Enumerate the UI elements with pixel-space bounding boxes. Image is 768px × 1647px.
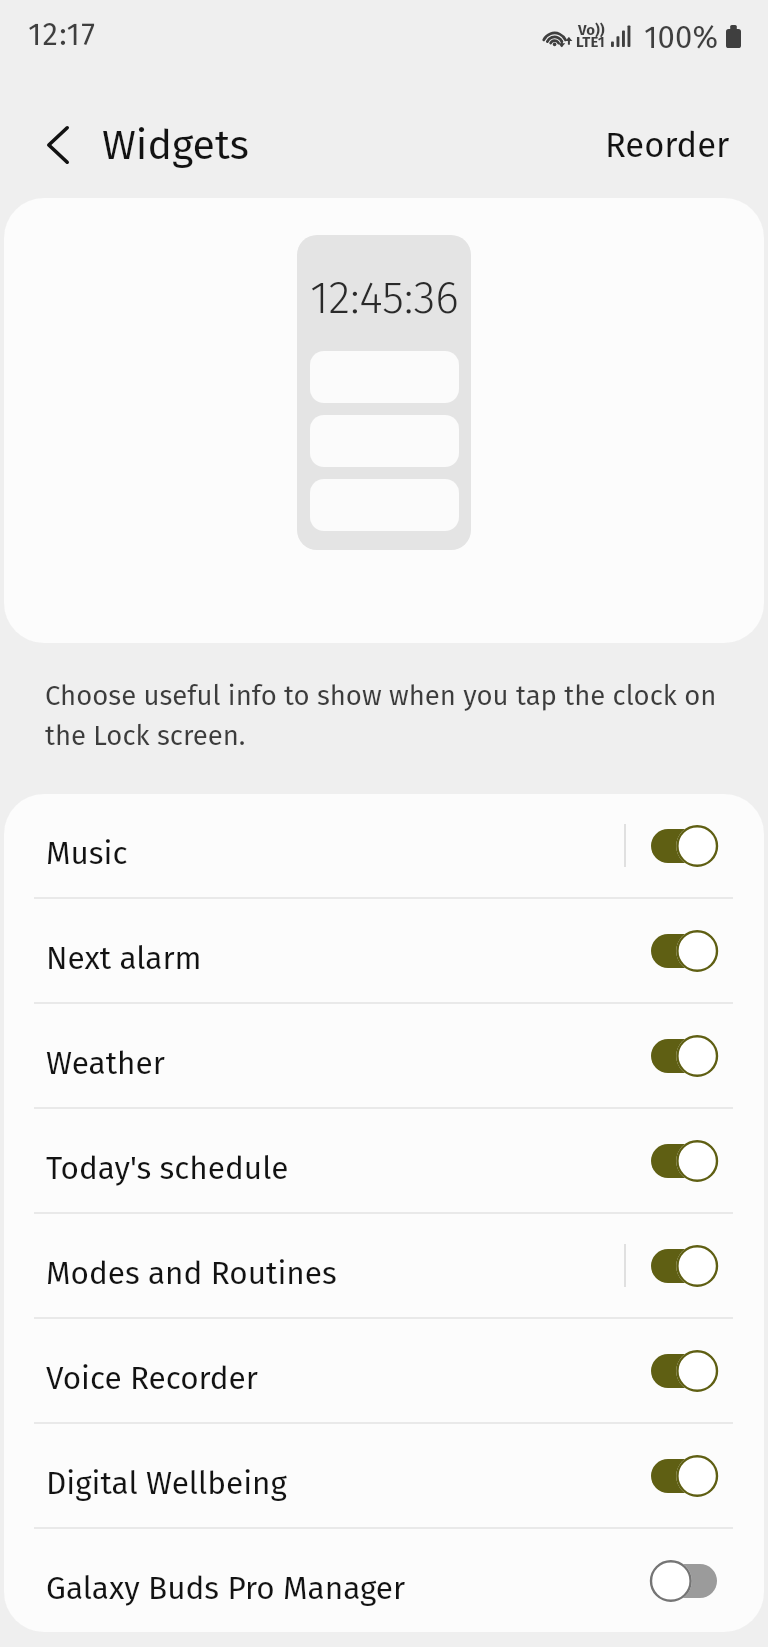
button[interactable]: Next alarm bbox=[4, 899, 764, 1002]
button[interactable]: Turn off bbox=[651, 1140, 717, 1182]
staticText: Choose useful info to show when you tap … bbox=[45, 679, 728, 752]
staticText: 12:17 bbox=[28, 16, 97, 53]
button[interactable]: Music bbox=[4, 794, 764, 897]
button[interactable]: Turn off bbox=[651, 1455, 717, 1497]
staticText: Galaxy Buds Pro Manager bbox=[46, 1570, 406, 1608]
staticText: Widgets bbox=[102, 121, 249, 170]
button[interactable]: Turn off bbox=[651, 825, 717, 867]
staticText: Vo)) bbox=[578, 21, 605, 39]
staticText: Modes and Routines bbox=[46, 1255, 337, 1293]
staticText: Today's schedule bbox=[46, 1150, 289, 1188]
staticText: Music bbox=[46, 835, 128, 873]
button[interactable]: Digital Wellbeing bbox=[4, 1424, 764, 1527]
button[interactable]: Today's schedule bbox=[4, 1109, 764, 1212]
button[interactable]: Weather bbox=[4, 1004, 764, 1107]
button[interactable]: Turn off bbox=[651, 1350, 717, 1392]
button[interactable]: Turn on bbox=[651, 1560, 717, 1602]
staticText: LTE1 bbox=[576, 33, 604, 51]
staticText: Digital Wellbeing bbox=[46, 1465, 287, 1503]
button[interactable]: Reorder bbox=[567, 103, 768, 188]
button[interactable]: Turn off bbox=[651, 1245, 717, 1287]
button[interactable]: Modes and Routines bbox=[4, 1214, 764, 1317]
staticText: Reorder bbox=[605, 125, 730, 166]
staticText: 12:45:36 bbox=[310, 271, 459, 325]
button[interactable]: Turn off bbox=[651, 1035, 717, 1077]
button[interactable]: Voice Recorder bbox=[4, 1319, 764, 1422]
button[interactable]: Galaxy Buds Pro Manager bbox=[4, 1529, 764, 1632]
staticText: Next alarm bbox=[46, 940, 202, 978]
button[interactable]: Navigate up bbox=[0, 97, 96, 193]
staticText: Voice Recorder bbox=[46, 1360, 258, 1398]
button[interactable]: Turn off bbox=[651, 930, 717, 972]
staticText: 100% bbox=[644, 19, 719, 56]
staticText: Weather bbox=[46, 1045, 165, 1083]
